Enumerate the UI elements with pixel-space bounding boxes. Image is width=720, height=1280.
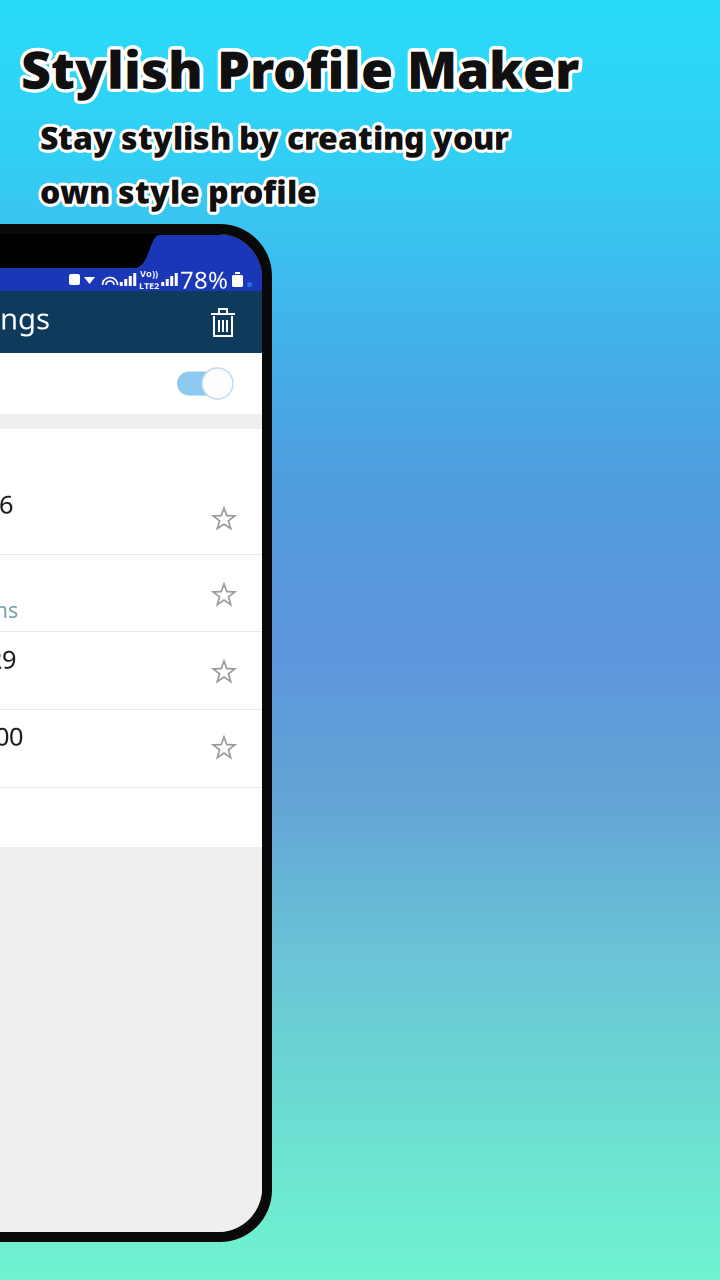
staticText: own style profile bbox=[41, 167, 318, 210]
button[interactable]: Delete all profiles bbox=[210, 307, 262, 337]
staticText: Stylish Profile Maker bbox=[23, 32, 581, 101]
staticText: own style profile bbox=[40, 170, 317, 212]
staticText: Stay stylish by creating your bbox=[43, 117, 512, 160]
button[interactable]: Priya Sharma 1436 bbox=[0, 429, 262, 554]
staticText: Stylish Profile Maker bbox=[21, 34, 579, 103]
staticText: own style profile bbox=[43, 171, 320, 214]
staticText: Stay stylish by creating your bbox=[38, 114, 507, 156]
button[interactable]: Anjali Kumari 4729 bbox=[0, 632, 262, 709]
staticText: Stay stylish by creating your bbox=[42, 114, 511, 156]
staticText: Stay stylish by creating your bbox=[43, 115, 512, 157]
staticText: Stay stylish by creating your bbox=[41, 117, 510, 160]
staticText: own style profile bbox=[43, 170, 320, 212]
staticText: Stay stylish by creating your bbox=[37, 117, 506, 160]
staticText: Stylish Profile Maker bbox=[21, 37, 579, 106]
staticText: Stay stylish by creating your bbox=[41, 119, 510, 161]
staticText: Stylish Profile Maker bbox=[23, 33, 581, 102]
staticText: Stay stylish by creating your bbox=[39, 113, 508, 156]
staticText: Stylish Profile Maker bbox=[18, 33, 576, 102]
staticText: own style profile bbox=[43, 169, 320, 211]
staticText: Stylish Profile Maker bbox=[18, 34, 576, 103]
staticText: own style profile bbox=[37, 170, 314, 212]
staticText: own style profile bbox=[39, 173, 316, 215]
staticText: Stay stylish by creating your bbox=[38, 115, 507, 158]
staticText: Stylish Profile Maker bbox=[24, 34, 582, 103]
staticText: own style profile bbox=[38, 169, 315, 212]
staticText: Stylish Profile Maker bbox=[19, 36, 577, 105]
staticText: Stylish Profile Maker bbox=[19, 35, 577, 104]
staticText: Stylish Profile Maker bbox=[19, 33, 577, 102]
staticText: own style profile bbox=[38, 172, 315, 215]
staticText: Stay stylish by creating your bbox=[39, 114, 508, 157]
staticText: Stylish Profile Maker bbox=[18, 35, 576, 104]
staticText: Stay stylish by creating your bbox=[38, 118, 507, 161]
staticText: Stay stylish by creating your bbox=[39, 119, 508, 161]
staticText: Stay stylish by creating your bbox=[40, 119, 509, 161]
staticText: Stylish Profile Maker bbox=[22, 31, 580, 100]
staticText: Stay stylish by creating your bbox=[39, 117, 508, 160]
staticText: own style profile bbox=[41, 169, 318, 212]
staticText: own style profile bbox=[41, 171, 318, 213]
staticText: own style profile bbox=[38, 168, 315, 210]
staticText: Stay stylish by creating your bbox=[37, 115, 506, 157]
staticText: 78% bbox=[180, 264, 228, 295]
staticText: Stay stylish by creating your bbox=[41, 114, 510, 157]
staticText: Stylish Profile Maker bbox=[22, 37, 580, 106]
staticText: Stay stylish by creating your bbox=[41, 113, 510, 156]
staticText: Rahul Sharma 1200 bbox=[0, 719, 23, 753]
staticText: own style profile bbox=[39, 167, 316, 210]
staticText: Stay stylish by creating your bbox=[40, 113, 509, 155]
staticText: Stay stylish by creating your bbox=[42, 118, 511, 161]
staticText: Stay stylish by creating your bbox=[41, 115, 510, 158]
staticText: own style profile bbox=[41, 168, 318, 211]
staticText: Stylish Profile Maker bbox=[20, 37, 578, 106]
staticText: Stylish Profile Maker bbox=[20, 36, 578, 105]
staticText: Stylish Profile Maker bbox=[22, 36, 580, 105]
button[interactable]: Save profiles toggle bbox=[172, 366, 262, 400]
staticText: Anjali Kumari 4729 bbox=[0, 642, 16, 676]
staticText: Stylish Profile Maker bbox=[23, 36, 581, 105]
staticText: Vo)) bbox=[140, 267, 158, 279]
staticText: Stylish Profile Maker bbox=[20, 31, 578, 100]
staticText: Stylish Profile Maker bbox=[20, 32, 578, 101]
staticText: Stylish Profile Maker bbox=[23, 35, 581, 104]
staticText: Priya Sharma 1436 bbox=[0, 487, 13, 521]
staticText: LTE2 bbox=[139, 279, 159, 292]
staticText: own style profile bbox=[40, 173, 317, 215]
staticText: Stay stylish by creating your bbox=[41, 117, 510, 159]
staticText: own style profile bbox=[41, 173, 318, 215]
staticText: Stylish Profile Maker bbox=[22, 32, 580, 101]
staticText: Stay stylish by creating your bbox=[37, 116, 506, 158]
staticText: own style profile bbox=[42, 172, 319, 215]
staticText: Stay stylish by creating your bbox=[38, 117, 507, 159]
staticText: own style profile bbox=[39, 171, 316, 214]
staticText: Stylish Profile Maker bbox=[24, 33, 582, 102]
staticText: Stay stylish by creating your bbox=[43, 116, 512, 158]
staticText: own style profile bbox=[41, 171, 318, 214]
staticText: Settings bbox=[0, 298, 50, 337]
button[interactable]: Rahul Sharma 1200 bbox=[0, 710, 262, 787]
staticText: Stylish Profile Maker bbox=[19, 32, 577, 101]
staticText: Get all premium items bbox=[0, 596, 18, 624]
staticText: own style profile bbox=[42, 168, 319, 210]
button[interactable]: Meera S bbox=[0, 555, 262, 631]
staticText: own style profile bbox=[37, 171, 314, 214]
staticText: own style profile bbox=[37, 169, 314, 211]
staticText: Stylish Profile Maker bbox=[24, 35, 582, 104]
staticText: own style profile bbox=[38, 171, 315, 213]
staticText: own style profile bbox=[39, 168, 316, 211]
staticText: Stay stylish by creating your bbox=[40, 116, 509, 158]
staticText: own style profile bbox=[40, 167, 317, 209]
staticText: Stylish Profile Maker bbox=[21, 31, 579, 100]
